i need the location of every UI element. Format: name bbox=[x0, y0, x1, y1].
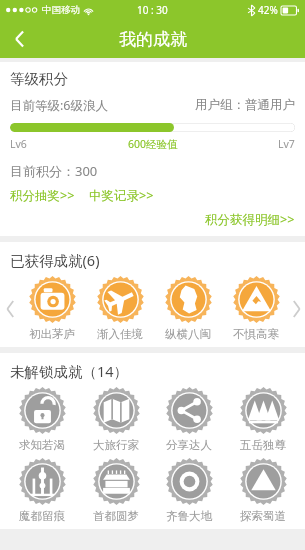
button[interactable]: 初出茅庐 bbox=[18, 276, 86, 341]
staticText: 渐入佳境 bbox=[97, 327, 143, 341]
staticText: 未解锁成就（14） bbox=[10, 361, 129, 381]
staticText: 探索蜀道 bbox=[240, 509, 286, 523]
staticText: 中奖记录>> bbox=[89, 187, 154, 204]
staticText: 求知若渴 bbox=[19, 438, 65, 452]
button[interactable]: 不惧高寒 bbox=[222, 276, 290, 341]
staticText: 纵横八闽 bbox=[165, 327, 211, 341]
button[interactable]: Previous bbox=[2, 294, 18, 324]
button[interactable]: 中奖记录>> bbox=[89, 187, 154, 204]
staticText: 已获得成就(6) bbox=[10, 250, 100, 270]
staticText: 积分抽奖>> bbox=[10, 187, 75, 204]
button[interactable]: 探索蜀道 bbox=[229, 458, 297, 523]
staticText: 分享达人 bbox=[166, 438, 212, 452]
staticText: 600经验值 bbox=[128, 137, 178, 151]
staticText: 目前积分：300 bbox=[10, 162, 98, 180]
staticText: Lv6 bbox=[10, 137, 27, 151]
staticText: 我的成就 bbox=[119, 29, 187, 50]
staticText: 齐鲁大地 bbox=[166, 509, 212, 523]
staticText: 目前等级:6级浪人 bbox=[10, 97, 109, 114]
staticText: 不惧高寒 bbox=[233, 327, 279, 341]
button[interactable]: 纵横八闽 bbox=[154, 276, 222, 341]
button[interactable]: 首都圆梦 bbox=[82, 458, 150, 523]
staticText: 积分获得明细>> bbox=[205, 211, 295, 228]
staticText: 42% bbox=[258, 3, 278, 17]
button[interactable]: 积分获得明细>> bbox=[205, 211, 295, 228]
button[interactable]: Back bbox=[0, 20, 40, 58]
staticText: 大旅行家 bbox=[93, 438, 139, 452]
button[interactable]: 魔都留痕 bbox=[8, 458, 76, 523]
staticText: 中国移动 bbox=[42, 4, 80, 16]
staticText: Lv7 bbox=[278, 137, 295, 151]
button[interactable]: 大旅行家 bbox=[82, 387, 150, 452]
staticText: 初出茅庐 bbox=[29, 327, 75, 341]
button[interactable]: 渐入佳境 bbox=[86, 276, 154, 341]
button[interactable]: Next bbox=[290, 294, 303, 324]
button[interactable]: 分享达人 bbox=[155, 387, 223, 452]
button[interactable]: 求知若渴 bbox=[8, 387, 76, 452]
button[interactable]: 五岳独尊 bbox=[229, 387, 297, 452]
staticText: 用户组：普通用户 bbox=[195, 97, 295, 113]
staticText: 等级积分 bbox=[10, 70, 68, 88]
staticText: 五岳独尊 bbox=[240, 438, 286, 452]
staticText: 10 : 30 bbox=[137, 3, 168, 17]
staticText: 魔都留痕 bbox=[19, 509, 65, 523]
button[interactable]: 齐鲁大地 bbox=[155, 458, 223, 523]
staticText: 首都圆梦 bbox=[93, 509, 139, 523]
button[interactable]: 积分抽奖>> bbox=[10, 187, 75, 204]
